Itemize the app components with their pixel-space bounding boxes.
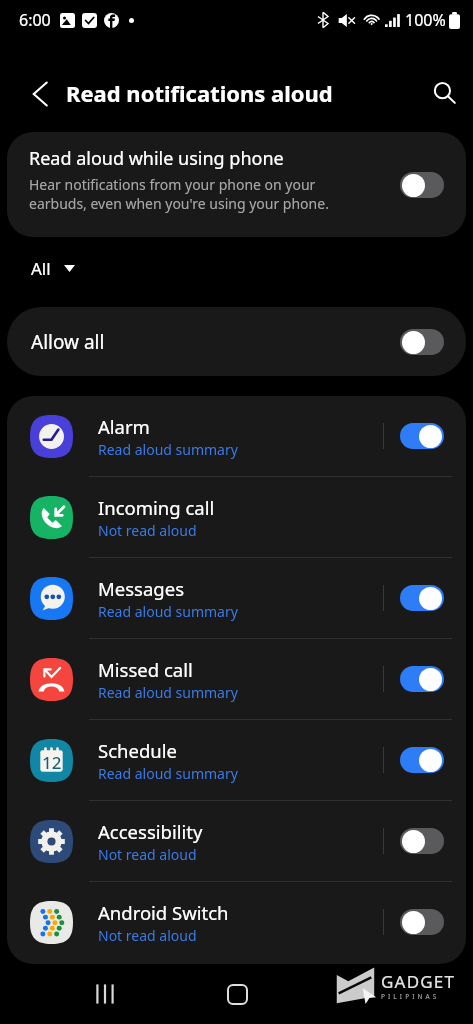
staticText: Not read aloud [98, 926, 197, 945]
button[interactable]: 12 [7, 720, 466, 800]
button[interactable]: Accessibility, off [400, 828, 444, 854]
staticText: Read aloud summary [98, 764, 238, 783]
button[interactable]: Accessibility [7, 801, 466, 881]
button[interactable]: Alarm [7, 396, 466, 476]
staticText: Hear notifications from your phone on yo… [29, 175, 349, 213]
staticText: Accessibility [98, 819, 203, 844]
button[interactable]: Android Switch, off [400, 909, 444, 935]
button[interactable]: Alarm, on [400, 423, 444, 449]
staticText: Allow all [31, 329, 105, 355]
staticText: Read aloud summary [98, 440, 238, 459]
button[interactable]: Schedule, on [400, 747, 444, 773]
button[interactable]: Read aloud while using phone, off [400, 172, 444, 198]
staticText: Android Switch [98, 900, 229, 925]
staticText: 12 [42, 751, 62, 774]
staticText: PILIPINAS [381, 992, 440, 1001]
button[interactable]: All [26, 252, 80, 285]
staticText: 100% [405, 9, 446, 31]
button[interactable]: Android Switch [7, 882, 466, 962]
staticText: Messages [98, 576, 184, 601]
staticText: Read aloud while using phone [29, 146, 284, 171]
staticText: Not read aloud [98, 521, 197, 540]
staticText: All [31, 257, 51, 280]
button[interactable]: Search [424, 72, 464, 112]
button[interactable]: Messages [7, 558, 466, 638]
button[interactable]: Incoming call [7, 477, 466, 557]
button[interactable]: Missed call, on [400, 666, 444, 692]
button[interactable]: Missed call [7, 639, 466, 719]
staticText: Read aloud summary [98, 683, 238, 702]
button[interactable]: Home [212, 969, 262, 1019]
staticText: Missed call [98, 657, 193, 682]
button[interactable]: Read aloud while using phone [7, 132, 466, 237]
button[interactable]: Messages, on [400, 585, 444, 611]
staticText: Schedule [98, 738, 177, 763]
staticText: GADGET [381, 970, 456, 993]
button[interactable]: Allow all [7, 307, 466, 376]
button[interactable]: Recent apps [80, 969, 130, 1019]
staticText: 6:00 [19, 9, 51, 31]
staticText: Not read aloud [98, 845, 197, 864]
button[interactable]: Back [20, 74, 60, 114]
staticText: Alarm [98, 414, 150, 439]
button[interactable]: Allow all, off [400, 329, 444, 355]
staticText: Read notifications aloud [66, 78, 333, 108]
staticText: Incoming call [98, 495, 215, 520]
staticText: Read aloud summary [98, 602, 238, 621]
